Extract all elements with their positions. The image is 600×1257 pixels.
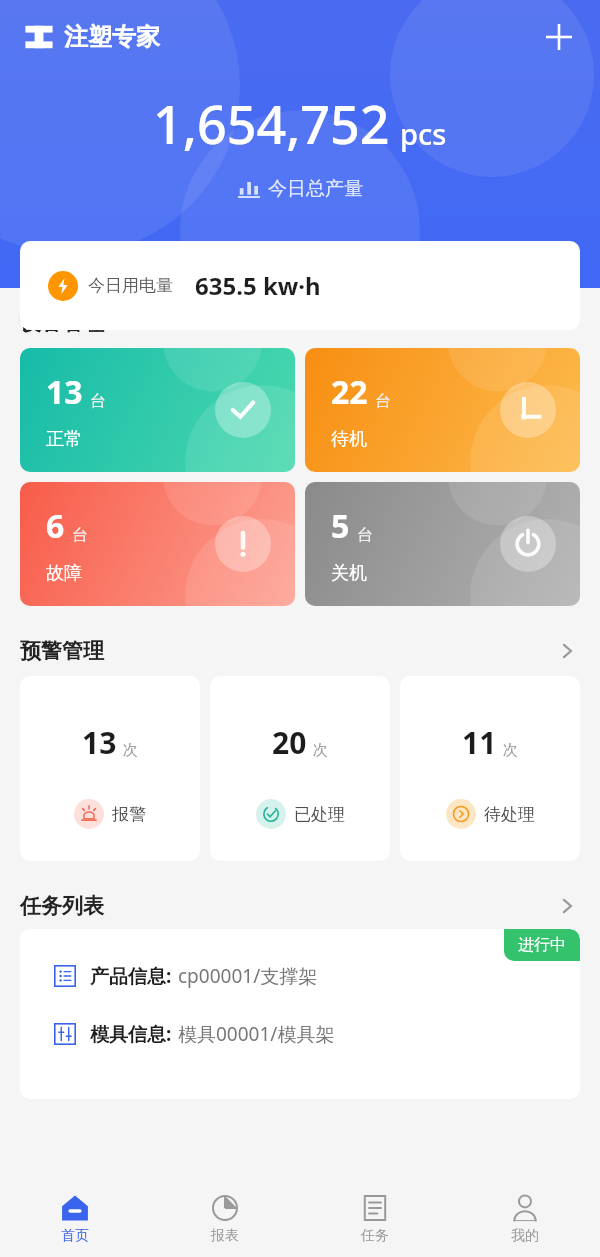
staticText: 6 xyxy=(46,504,65,548)
staticText: 进行中 xyxy=(518,935,566,955)
staticText: 次 xyxy=(503,741,518,760)
staticText: 11 xyxy=(462,722,497,763)
staticText: 台 xyxy=(72,525,88,545)
button[interactable]: 报表 xyxy=(150,1180,300,1257)
staticText: 我的 xyxy=(511,1227,539,1245)
staticText: 已处理 xyxy=(294,804,345,825)
staticText: 台 xyxy=(375,391,391,411)
button[interactable]: 今日用电量 xyxy=(20,241,580,330)
staticText: 报表 xyxy=(211,1227,239,1245)
button[interactable]: 注塑专家 xyxy=(22,20,160,54)
staticText: 首页 xyxy=(61,1227,89,1245)
button[interactable]: 产品信息: xyxy=(20,929,580,1099)
staticText: 模具00001/模具架 xyxy=(178,1021,335,1047)
button[interactable]: 首页 xyxy=(0,1180,150,1257)
staticText: 1,654,752 xyxy=(153,88,390,159)
button[interactable]: 13 xyxy=(20,676,200,861)
button[interactable]: 任务列表 xyxy=(20,893,578,919)
button[interactable]: 13 xyxy=(20,348,295,472)
staticText: 今日用电量 xyxy=(88,275,173,296)
staticText: 任务 xyxy=(361,1227,389,1245)
staticText: 今日总产量 xyxy=(268,177,363,201)
button[interactable]: 任务 xyxy=(300,1180,450,1257)
staticText: 正常 xyxy=(46,428,82,451)
staticText: 模具信息: xyxy=(90,1021,172,1047)
button[interactable]: 11 xyxy=(400,676,580,861)
staticText: 产品信息: xyxy=(90,963,172,989)
staticText: 预警管理 xyxy=(20,638,104,664)
staticText: 关机 xyxy=(331,562,367,585)
staticText: 台 xyxy=(90,391,106,411)
staticText: 20 xyxy=(272,722,307,763)
button[interactable]: 22 xyxy=(305,348,580,472)
button[interactable]: 20 xyxy=(210,676,390,861)
staticText: 故障 xyxy=(46,562,82,585)
button[interactable]: Add xyxy=(540,18,578,56)
button[interactable]: 我的 xyxy=(450,1180,600,1257)
button[interactable]: 预警管理 xyxy=(20,638,578,664)
staticText: 待处理 xyxy=(484,804,535,825)
staticText: 注塑专家 xyxy=(64,22,160,52)
staticText: 次 xyxy=(313,741,328,760)
staticText: 次 xyxy=(123,741,138,760)
button[interactable]: 5 xyxy=(305,482,580,606)
button[interactable]: 6 xyxy=(20,482,295,606)
staticText: cp00001/支撑架 xyxy=(178,963,318,989)
staticText: 台 xyxy=(357,525,373,545)
staticText: 5 xyxy=(331,504,350,548)
staticText: 22 xyxy=(331,370,368,414)
staticText: 13 xyxy=(82,722,117,763)
staticText: 待机 xyxy=(331,428,367,451)
staticText: 635.5 kw·h xyxy=(195,269,321,302)
staticText: pcs xyxy=(400,114,447,153)
staticText: 设备管理 xyxy=(20,310,104,336)
staticText: 报警 xyxy=(112,804,146,825)
staticText: 13 xyxy=(46,370,83,414)
staticText: 任务列表 xyxy=(20,893,104,919)
